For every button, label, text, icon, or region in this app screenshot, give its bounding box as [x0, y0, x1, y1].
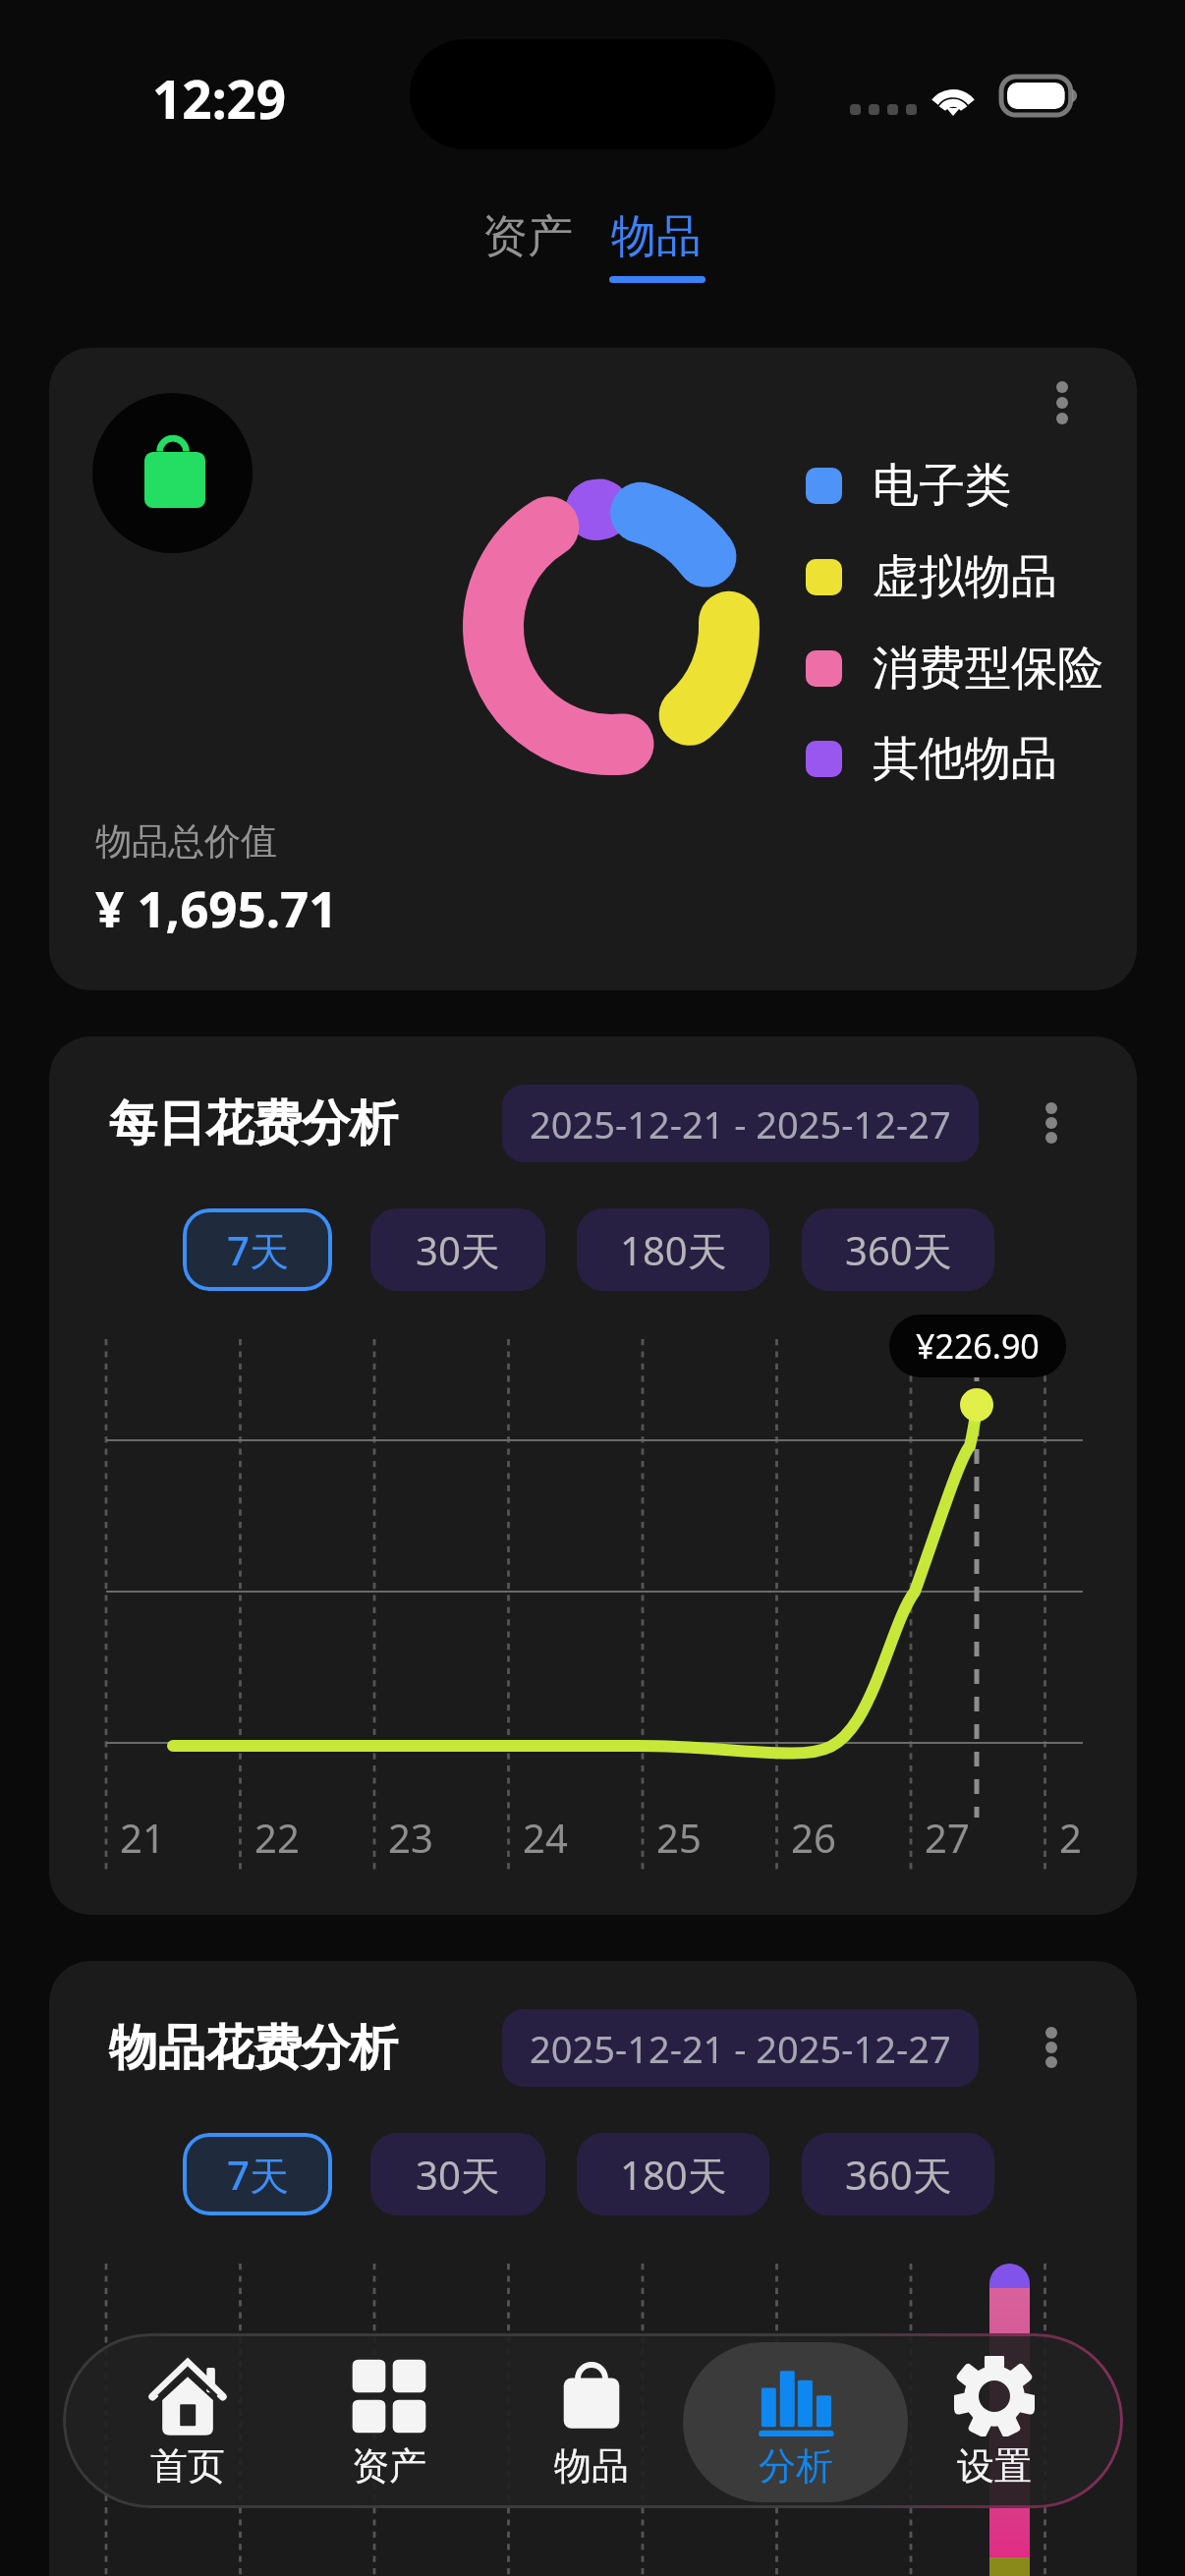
staticText: 物品 — [611, 208, 702, 265]
staticText: 物品总价值 — [95, 818, 277, 865]
button[interactable]: 180天 — [577, 2133, 769, 2215]
button[interactable]: 2025-12-21 - 2025-12-27 — [502, 1085, 979, 1162]
staticText: 180天 — [620, 2148, 727, 2202]
staticText: 物品花费分析 — [109, 2018, 398, 2079]
button[interactable]: 30天 — [370, 2133, 545, 2215]
staticText: 每日花费分析 — [109, 1093, 398, 1154]
button[interactable]: 设置 — [906, 2342, 1083, 2502]
staticText: 2025-12-21 - 2025-12-27 — [530, 1098, 951, 1149]
staticText: ¥226.90 — [916, 1323, 1040, 1369]
staticText: 设置 — [957, 2442, 1032, 2490]
button[interactable]: 物品 — [503, 2342, 680, 2502]
button[interactable]: 分析 — [707, 2342, 884, 2502]
button[interactable]: 资产 — [463, 195, 592, 279]
staticText: 分析 — [759, 2442, 833, 2490]
staticText: 7天 — [227, 1223, 289, 1277]
staticText: 360天 — [845, 1223, 952, 1277]
staticText: ¥ 1,695.71 — [95, 873, 338, 941]
staticText: 25 — [656, 1811, 702, 1864]
staticText: 180天 — [620, 1223, 727, 1277]
staticText: 虚拟物品 — [873, 548, 1057, 606]
staticText: 其他物品 — [873, 730, 1057, 788]
button[interactable]: 180天 — [577, 1208, 769, 1291]
staticText: 资产 — [482, 208, 573, 265]
staticText: 资产 — [352, 2442, 426, 2490]
button[interactable]: 7天 — [183, 1208, 332, 1291]
staticText: 12:29 — [152, 63, 287, 134]
staticText: 360天 — [845, 2148, 952, 2202]
staticText: 30天 — [416, 1223, 500, 1277]
button[interactable]: More options — [1028, 368, 1097, 437]
staticText: 30天 — [416, 2148, 500, 2202]
button[interactable]: 360天 — [802, 1208, 994, 1291]
staticText: 2025-12-21 - 2025-12-27 — [530, 2023, 951, 2074]
staticText: 2 — [1059, 1811, 1082, 1864]
button[interactable]: More options — [1017, 2013, 1086, 2082]
staticText: 21 — [120, 1811, 165, 1864]
staticText: 7天 — [227, 2148, 289, 2202]
staticText: 23 — [388, 1811, 433, 1864]
staticText: 24 — [523, 1811, 568, 1864]
button[interactable]: 360天 — [802, 2133, 994, 2215]
button[interactable]: 资产 — [301, 2342, 478, 2502]
button[interactable]: 物品 — [592, 195, 721, 279]
button[interactable]: 2025-12-21 - 2025-12-27 — [502, 2009, 979, 2087]
staticText: 27 — [925, 1811, 970, 1864]
button[interactable]: 7天 — [183, 2133, 332, 2215]
staticText: 物品 — [554, 2442, 629, 2490]
staticText: 22 — [254, 1811, 300, 1864]
button[interactable]: 首页 — [99, 2342, 276, 2502]
staticText: 电子类 — [873, 457, 1011, 515]
staticText: 26 — [791, 1811, 836, 1864]
button[interactable]: More options — [1017, 1089, 1086, 1157]
staticText: 消费型保险 — [873, 640, 1103, 698]
staticText: 首页 — [150, 2442, 225, 2490]
button[interactable]: 30天 — [370, 1208, 545, 1291]
